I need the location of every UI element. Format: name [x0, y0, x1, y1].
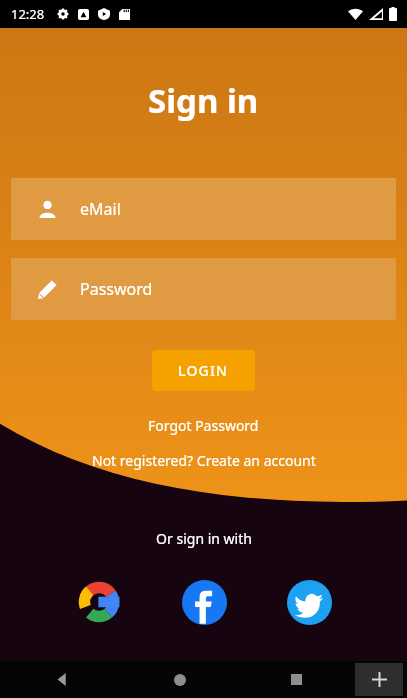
button[interactable]: Password	[11, 258, 396, 320]
staticText: Not registered? Create an account	[92, 451, 316, 470]
button[interactable]: LOGIN	[152, 350, 255, 391]
button[interactable]: Sign in with Google	[73, 576, 125, 628]
button[interactable]: eMail	[11, 178, 396, 240]
button[interactable]: Forgot Password	[140, 413, 267, 438]
button[interactable]: Sign in with Twitter	[283, 576, 335, 628]
button[interactable]: Back	[4, 661, 121, 698]
staticText: Password	[80, 278, 153, 300]
staticText: eMail	[80, 198, 121, 220]
button[interactable]: Recent apps	[238, 661, 355, 698]
staticText: Sign in	[148, 78, 259, 123]
button[interactable]: Home	[121, 661, 238, 698]
button[interactable]: Sign in with Facebook	[178, 576, 230, 628]
staticText: LOGIN	[178, 361, 229, 380]
button[interactable]: Not registered? Create an account	[84, 448, 324, 473]
staticText: Forgot Password	[148, 416, 259, 435]
button[interactable]: Add	[355, 663, 403, 696]
staticText: 12:28	[11, 5, 45, 23]
staticText: Or sign in with	[156, 529, 252, 548]
